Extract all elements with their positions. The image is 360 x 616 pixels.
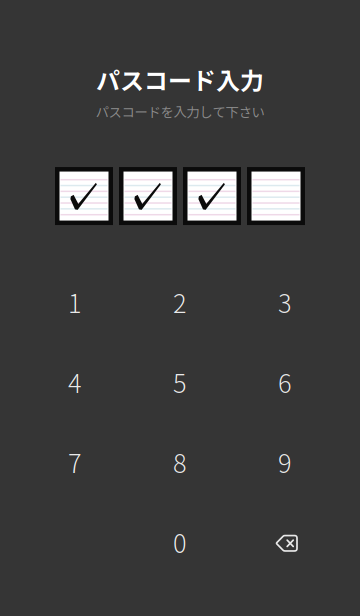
button[interactable]: 7 [22, 422, 127, 502]
staticText: 0 [173, 524, 187, 560]
button[interactable]: 6 [232, 342, 337, 422]
button[interactable]: Delete [232, 502, 337, 582]
button[interactable]: 2 [127, 262, 232, 342]
staticText: 8 [173, 444, 187, 480]
button[interactable]: 4 [22, 342, 127, 422]
staticText: 4 [68, 364, 82, 400]
staticText: 5 [173, 364, 187, 400]
button[interactable]: 5 [127, 342, 232, 422]
staticText: 6 [278, 364, 292, 400]
staticText: パスコードを入力して下さい [95, 102, 264, 121]
button[interactable]: 9 [232, 422, 337, 502]
staticText: 3 [278, 284, 292, 320]
button[interactable]: 8 [127, 422, 232, 502]
staticText: 2 [173, 284, 187, 320]
staticText: 9 [278, 444, 292, 480]
button[interactable]: 0 [127, 502, 232, 582]
staticText: パスコード入力 [96, 62, 264, 97]
staticText: 1 [68, 284, 82, 320]
staticText: 7 [68, 444, 82, 480]
button[interactable]: 3 [232, 262, 337, 342]
button[interactable]: 1 [22, 262, 127, 342]
